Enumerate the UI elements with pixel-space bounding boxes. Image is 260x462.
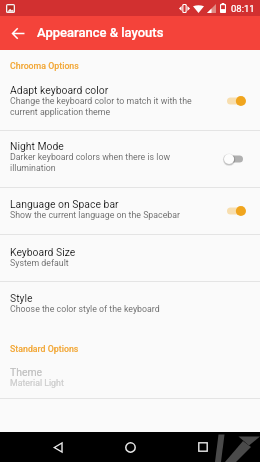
- staticText: Keyboard Size: [10, 246, 76, 258]
- staticText: Chrooma Options: [10, 61, 260, 71]
- staticText: Material Light: [10, 378, 64, 388]
- button[interactable]: Theme: [0, 354, 260, 398]
- staticText: Adapt keyboard color: [10, 84, 109, 96]
- button[interactable]: Night Mode: [0, 131, 260, 187]
- staticText: Language on Space bar: [10, 198, 119, 210]
- button[interactable]: Back: [43, 432, 73, 462]
- button[interactable]: Recents: [188, 432, 218, 462]
- button[interactable]: Switch off: [224, 151, 246, 167]
- button[interactable]: Switch on: [224, 93, 246, 109]
- button[interactable]: Keyboard Size: [0, 235, 260, 281]
- staticText: Show the current language on the Spaceba…: [10, 210, 181, 220]
- staticText: Night Mode: [10, 140, 64, 152]
- staticText: Style: [10, 292, 33, 304]
- button[interactable]: Switch on: [224, 203, 246, 219]
- button[interactable]: Language on Space bar: [0, 188, 260, 234]
- staticText: Darker keyboard colors when there is low…: [10, 152, 171, 173]
- staticText: Theme: [10, 366, 43, 378]
- staticText: Appearance & layouts: [37, 25, 164, 40]
- staticText: Standard Options: [10, 344, 260, 354]
- button[interactable]: Home: [115, 432, 145, 462]
- staticText: System default: [10, 258, 69, 268]
- staticText: 08:11: [231, 3, 255, 14]
- button[interactable]: Adapt keyboard color: [0, 71, 260, 130]
- staticText: Change the keyboard color to match it wi…: [10, 96, 192, 117]
- button[interactable]: Style: [0, 282, 260, 331]
- staticText: Choose the color style of the keyboard: [10, 304, 160, 314]
- button[interactable]: Back: [6, 21, 30, 45]
